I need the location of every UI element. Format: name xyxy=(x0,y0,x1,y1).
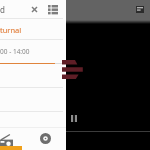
button[interactable]: Subtitles xyxy=(134,3,146,15)
button[interactable]: turnal xyxy=(0,19,66,39)
button[interactable]: Recordings xyxy=(28,127,61,150)
staticText: turnal xyxy=(0,25,22,35)
button[interactable]: Clear xyxy=(27,2,41,16)
staticText: d xyxy=(0,4,5,15)
button[interactable]: List view xyxy=(45,1,61,17)
button[interactable]: Radio xyxy=(0,127,28,150)
staticText: 00 - 14:00 xyxy=(0,47,30,56)
button[interactable]: 00 - 14:00 xyxy=(0,40,66,63)
button[interactable] xyxy=(0,64,66,87)
